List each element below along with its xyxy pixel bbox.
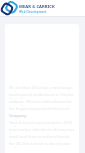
- other: Mear & Carrick home: [2, 3, 17, 13]
- staticText: MEAR & CARRICK: [19, 4, 55, 10]
- staticText: Company: [9, 113, 27, 120]
- staticText: Web Development: [19, 10, 47, 14]
- staticText: have worked with clients of every size, …: [9, 127, 75, 134]
- staticText: small local firms to national brands acr…: [9, 134, 75, 141]
- staticText: the UK. Get in touch to discuss your bui…: [9, 141, 75, 148]
- button[interactable]: Mear & Carrick home: [0, 0, 85, 16]
- staticText: Mear & Carrick was founded in 2014 and w…: [9, 120, 75, 127]
- staticText: the largest companies in the world.: [9, 106, 71, 113]
- staticText: development studio based in Chester. We …: [9, 92, 75, 99]
- staticText: software. We have built software for som…: [9, 99, 75, 106]
- staticText: We are Mear & Carrick, a web design and: [9, 85, 75, 92]
